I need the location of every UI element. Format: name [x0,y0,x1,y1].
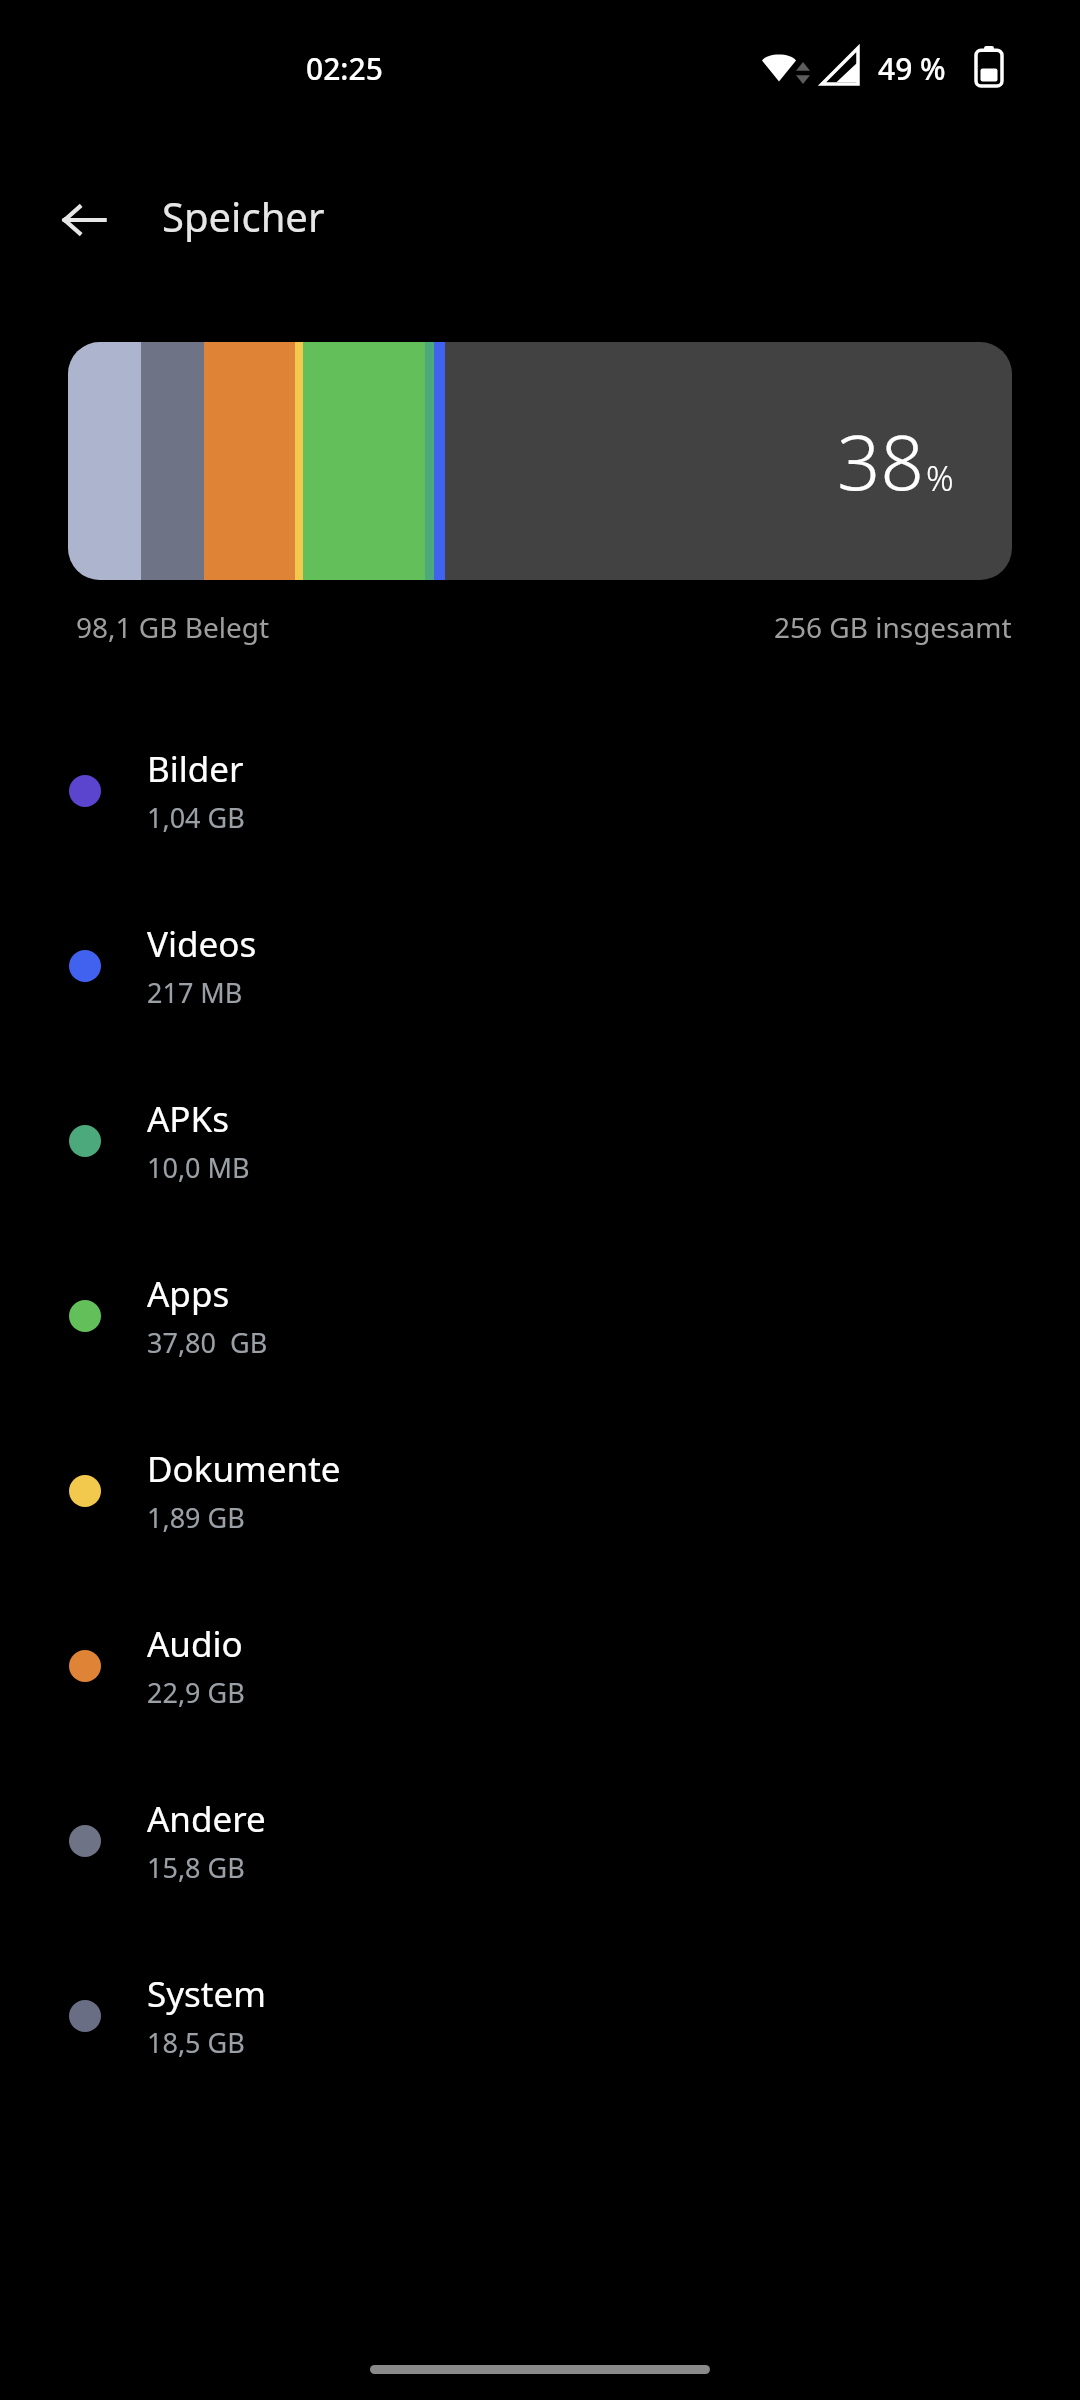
staticText: % [926,455,954,501]
staticText: 49 % [878,48,946,89]
staticText: Audio [147,1620,243,1668]
staticText: 1,04 GB [147,799,245,836]
button[interactable]: Bilder [0,703,1080,878]
staticText: Dokumente [147,1445,341,1493]
staticText: APKs [147,1095,229,1143]
staticText: 10,0 MB [147,1149,250,1186]
button[interactable]: Dokumente [0,1403,1080,1578]
staticText: Videos [147,920,257,968]
staticText: 98,1 GB Belegt [76,608,270,646]
staticText: Andere [147,1795,266,1843]
staticText: 02:25 [306,48,383,89]
staticText: Apps [147,1270,230,1318]
button[interactable]: Audio [0,1578,1080,1753]
staticText: 15,8 GB [147,1849,245,1886]
button[interactable]: Zurück [42,178,126,262]
button[interactable]: Videos [0,878,1080,1053]
staticText: 1,89 GB [147,1499,245,1536]
staticText: 217 MB [147,974,243,1011]
button[interactable]: APKs [0,1053,1080,1228]
staticText: 22,9 GB [147,1674,245,1711]
staticText: 37,80 GB [147,1324,268,1361]
staticText: Bilder [147,745,244,793]
button[interactable]: System [0,1928,1080,2103]
staticText: 38 [837,409,924,513]
staticText: Speicher [162,189,325,243]
button[interactable]: 38 [68,342,1012,580]
button[interactable]: Andere [0,1753,1080,1928]
button[interactable]: Apps [0,1228,1080,1403]
staticText: 256 GB insgesamt [774,608,1012,646]
staticText: 18,5 GB [147,2024,245,2061]
staticText: System [147,1970,266,2018]
